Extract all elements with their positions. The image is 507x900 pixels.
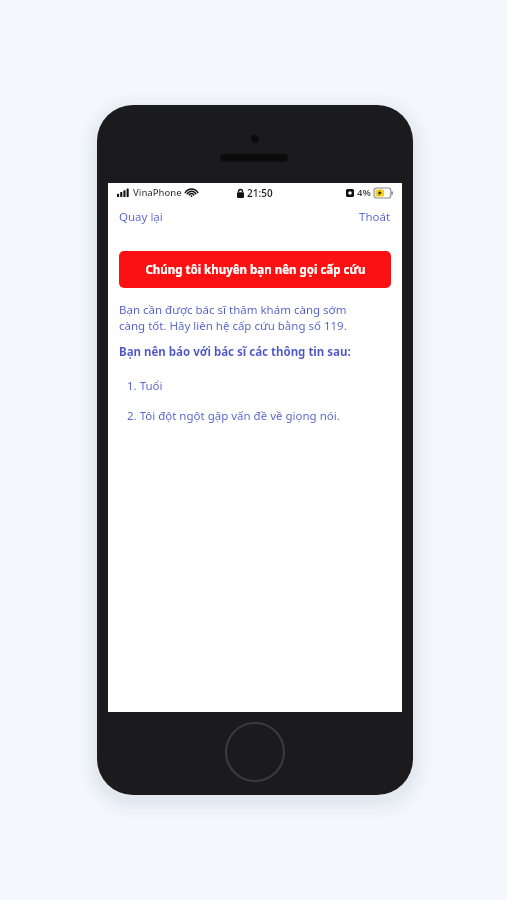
staticText: 21:50: [247, 186, 273, 200]
staticText: Thoát: [359, 209, 391, 225]
staticText: 1. Tuổi: [127, 378, 163, 394]
button[interactable]: Thoát: [348, 204, 402, 230]
staticText: Bạn nên báo với bác sĩ các thông tin sau…: [119, 344, 351, 360]
staticText: Chúng tôi khuyên bạn nên gọi cấp cứu: [145, 262, 366, 278]
staticText: càng tốt. Hãy liên hệ cấp cứu bằng số 11…: [119, 318, 347, 334]
staticText: VinaPhone: [133, 186, 182, 199]
staticText: 2. Tôi đột ngột gặp vấn đề về giọng nói.: [127, 408, 340, 424]
staticText: Quay lại: [119, 209, 163, 225]
button[interactable]: Chúng tôi khuyên bạn nên gọi cấp cứu: [119, 251, 391, 288]
button[interactable]: Quay lại: [108, 204, 174, 230]
staticText: 4%: [357, 186, 371, 199]
staticText: Bạn cần được bác sĩ thăm khám càng sớm: [119, 302, 347, 318]
